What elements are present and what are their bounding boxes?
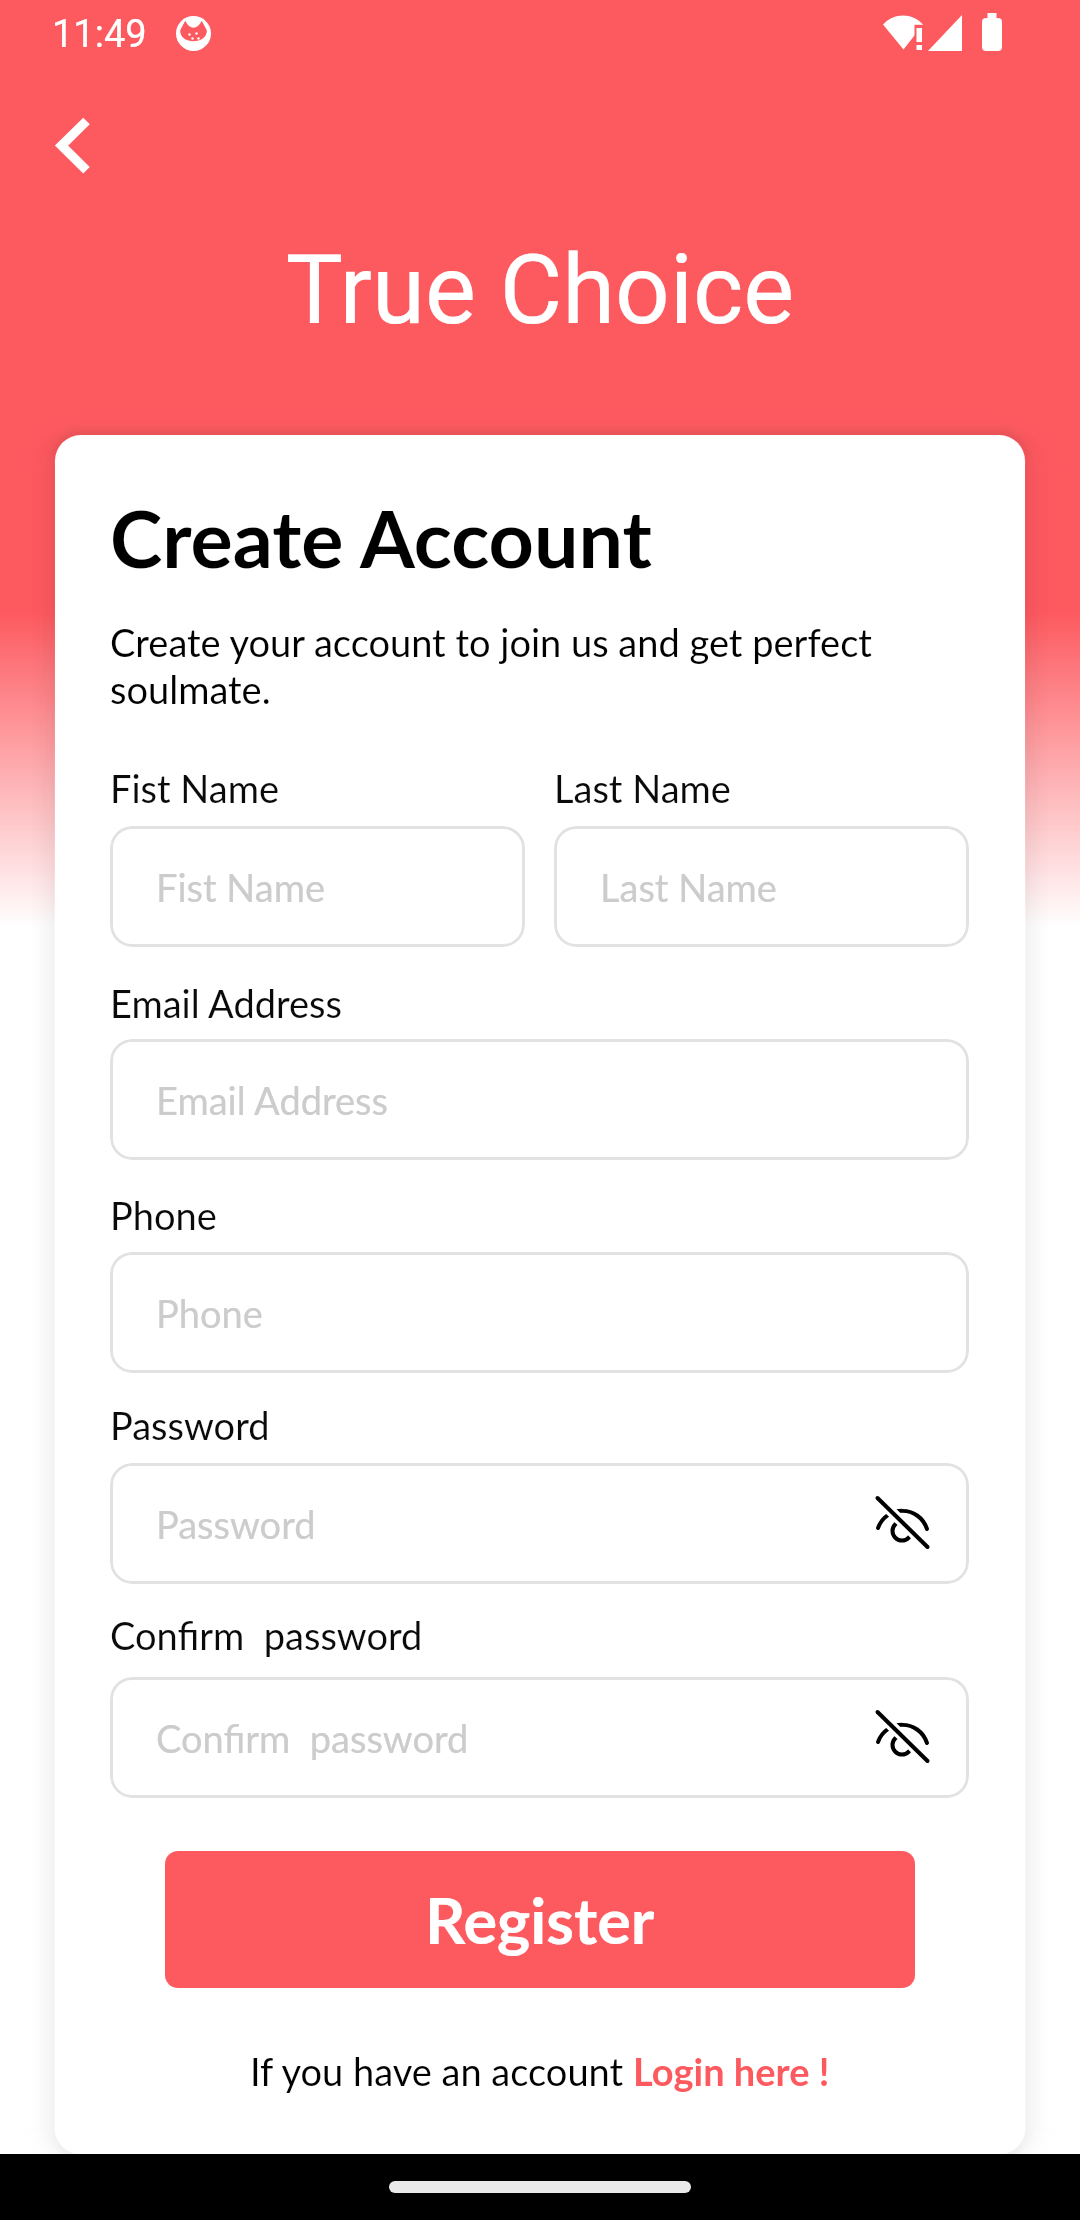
staticText: Create your account to join us and get p… (110, 619, 872, 712)
staticText: 11:49 (52, 12, 147, 57)
button[interactable]: Email Address (110, 1039, 969, 1160)
staticText: Last Name (600, 864, 777, 910)
button[interactable]: Password (110, 1463, 969, 1584)
staticText: Phone (156, 1290, 263, 1336)
staticText: Confirm password (110, 1612, 423, 1658)
staticText: Phone (110, 1192, 217, 1238)
button[interactable]: Last Name (554, 826, 969, 947)
button[interactable]: Toggle password visibility (877, 1711, 929, 1763)
staticText: Create Account (110, 490, 652, 585)
staticText: Email Address (156, 1077, 388, 1123)
staticText: Password (156, 1501, 316, 1547)
staticText: Fist Name (156, 864, 325, 910)
staticText: Email Address (110, 980, 342, 1026)
staticText: Fist Name (110, 765, 279, 811)
staticText: Confirm password (156, 1715, 469, 1761)
staticText: Login here ! (633, 2048, 830, 2094)
staticText: If you have an account (250, 2048, 633, 2094)
button[interactable]: Register (165, 1851, 915, 1988)
button[interactable]: Phone (110, 1252, 969, 1373)
button[interactable]: Back (28, 98, 118, 188)
staticText: Register (425, 1882, 655, 1958)
button[interactable]: Toggle password visibility (877, 1497, 929, 1549)
staticText: Last Name (554, 765, 731, 811)
staticText: Password (110, 1402, 270, 1448)
button[interactable]: Fist Name (110, 826, 525, 947)
button[interactable]: Confirm password (110, 1677, 969, 1798)
button[interactable]: Login here ! (633, 2048, 830, 2094)
staticText: True Choice (0, 234, 1080, 347)
